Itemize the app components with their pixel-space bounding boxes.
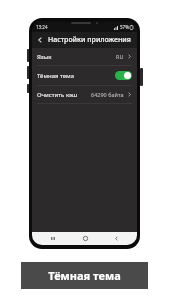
staticText: Настройки приложения <box>48 35 131 45</box>
staticText: 13:24 <box>36 24 48 30</box>
staticText: 57% <box>120 24 129 30</box>
staticText: Очистить кэш <box>37 91 78 99</box>
button[interactable]: Назад <box>32 32 48 48</box>
staticText: Язык <box>37 53 52 61</box>
button[interactable]: Назад <box>106 232 126 245</box>
staticText: 64290 байта <box>91 91 124 98</box>
button[interactable]: Тёмная тема <box>21 262 148 289</box>
button[interactable]: Недавние <box>43 232 63 245</box>
button[interactable]: Очистить кэш <box>32 86 137 103</box>
staticText: Тёмная тема <box>37 72 75 80</box>
button[interactable]: Домой <box>75 232 95 245</box>
button[interactable]: Тёмная тема <box>32 66 137 85</box>
staticText: RU <box>116 53 124 60</box>
button[interactable]: Язык <box>32 48 137 65</box>
staticText: Тёмная тема <box>48 268 121 283</box>
